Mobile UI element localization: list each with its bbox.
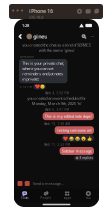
staticText: correction — [20, 55, 34, 58]
staticText: March 11, 2:32 PM — [43, 143, 69, 146]
staticText: gineu — [33, 33, 47, 40]
button[interactable]: More — [86, 34, 95, 39]
staticText: March 4, 5:50 PM — [44, 91, 68, 95]
staticText: Chats — [21, 196, 28, 200]
button[interactable]: Apps — [56, 189, 78, 202]
staticText: You — [86, 196, 91, 200]
button[interactable]: Back — [17, 32, 23, 40]
staticText: 2:14 PM — [19, 85, 31, 88]
button[interactable]: Chats — [14, 189, 35, 202]
staticText: This is your private chat, where you can… — [22, 60, 64, 82]
staticText: you created an event scheduled for Monda… — [27, 95, 86, 106]
staticText: iOS 18.4 — [29, 14, 43, 20]
staticText: March 6, 3:01 PM — [44, 108, 68, 112]
staticText: iPhone 16 — [29, 7, 53, 14]
staticText: ❤️😊 — [34, 84, 44, 89]
staticText: you created the chat as a kind of SERVIC… — [22, 42, 91, 53]
button[interactable]: People — [35, 189, 56, 202]
staticText: People — [40, 196, 51, 200]
staticText: March 10, 1:30 AM — [43, 122, 69, 126]
button[interactable]: You — [78, 189, 99, 202]
button[interactable]: Search — [81, 34, 86, 39]
button[interactable]: Record — [94, 9, 99, 14]
button[interactable]: Rotate — [77, 9, 82, 14]
staticText: ❤️ 😀 😂 😮 👍 — [63, 135, 92, 141]
staticText: Send a message... — [33, 181, 64, 186]
staticText: Apps — [64, 196, 71, 200]
staticText: This is my edited note dope! — [45, 113, 92, 119]
button[interactable]: Screenshot — [86, 9, 91, 14]
staticText: Sidebar message — [62, 148, 92, 154]
staticText: Testing someone on! — [57, 128, 92, 133]
button[interactable]: Camera — [25, 181, 30, 186]
staticText: 3 replies — [79, 156, 92, 160]
button[interactable]: 3 replies — [74, 155, 94, 160]
staticText: 1:28 — [22, 23, 29, 28]
